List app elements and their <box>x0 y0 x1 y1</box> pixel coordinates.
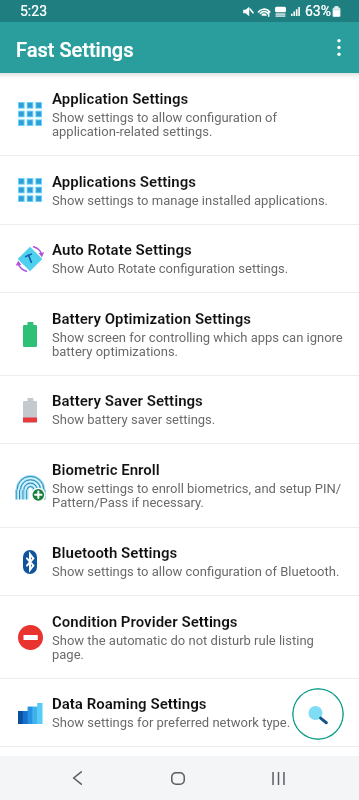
button[interactable]: More options <box>319 22 359 73</box>
staticText: Data Roaming Settings <box>52 695 207 713</box>
button[interactable]: Applications Settings <box>0 156 359 224</box>
staticText: Battery Saver Settings <box>52 392 203 410</box>
staticText: Condition Provider Settings <box>52 613 238 631</box>
button[interactable]: Data Roaming Settings <box>0 679 359 746</box>
staticText: Bluetooth Settings <box>52 544 178 562</box>
staticText: Application Settings <box>52 90 189 108</box>
button[interactable]: Recent apps <box>248 756 308 800</box>
staticText: Show screen for controlling which apps c… <box>52 330 345 359</box>
staticText: Battery Optimization Settings <box>52 310 252 328</box>
staticText: Applications Settings <box>52 173 196 191</box>
staticText: Biometric Enroll <box>52 461 160 479</box>
button[interactable]: Biometric Enroll <box>0 444 359 527</box>
staticText: 63% <box>305 3 331 19</box>
button[interactable]: Search <box>292 688 344 740</box>
staticText: Show settings to enroll biometrics, and … <box>52 481 345 510</box>
staticText: Auto Rotate Settings <box>52 241 192 259</box>
button[interactable]: Auto Rotate Settings <box>0 225 359 292</box>
button[interactable]: Back <box>47 756 107 800</box>
staticText: 5:23 <box>20 3 47 19</box>
button[interactable]: Battery Saver Settings <box>0 376 359 443</box>
staticText: Show settings to allow configuration of … <box>52 110 345 139</box>
button[interactable]: Home <box>148 756 208 800</box>
button[interactable]: Bluetooth Settings <box>0 528 359 595</box>
staticText: Show settings to allow configuration of … <box>52 564 340 579</box>
button[interactable]: Battery Optimization Settings <box>0 293 359 375</box>
staticText: Show settings for preferred network type… <box>52 715 291 730</box>
button[interactable]: Application Settings <box>0 73 359 155</box>
button[interactable]: Condition Provider Settings <box>0 596 359 678</box>
staticText: Fast Settings <box>16 38 134 61</box>
staticText: Show the automatic do not disturb rule l… <box>52 633 345 662</box>
staticText: Show settings to manage installed applic… <box>52 193 329 208</box>
staticText: Show Auto Rotate configuration settings. <box>52 261 289 276</box>
staticText: Show battery saver settings. <box>52 412 216 427</box>
